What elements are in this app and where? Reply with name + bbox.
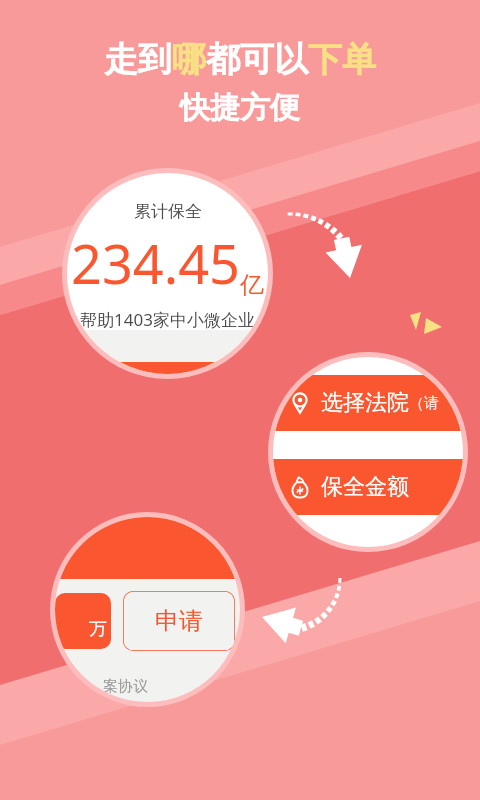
staticText: 帮助1403家中小微企业 (80, 308, 255, 331)
staticText: 都可以 (206, 38, 308, 81)
button[interactable]: 申请 (50, 512, 245, 707)
staticText: 快捷方便 (180, 89, 300, 127)
staticText: 保全金额 (321, 473, 409, 501)
staticText: 走到 (104, 38, 172, 81)
button[interactable]: 选择法院 (273, 375, 463, 431)
staticText: 234.45 (71, 226, 240, 300)
button[interactable]: 选择法院与保全金额 (268, 352, 468, 552)
button[interactable]: 申请 (123, 591, 235, 651)
staticText: 下单 (308, 38, 376, 81)
staticText: 选择法院 (321, 389, 409, 417)
staticText: 累计保全 (134, 201, 202, 222)
button[interactable]: 万 (55, 593, 111, 649)
staticText: （请 (409, 394, 439, 413)
button[interactable]: 保全金额 (273, 459, 463, 515)
staticText: 申请 (155, 606, 203, 636)
staticText: 案协议 (103, 677, 148, 696)
staticText: 万 (89, 618, 107, 641)
staticText: 哪 (172, 38, 206, 81)
staticText: 亿 (240, 270, 264, 300)
button[interactable]: 累计保全统计 (62, 168, 273, 379)
